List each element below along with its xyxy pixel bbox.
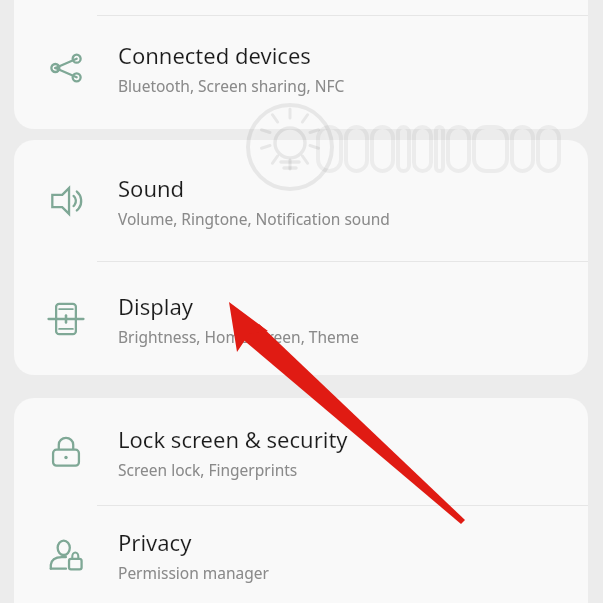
button[interactable]: Privacy — [14, 506, 588, 603]
staticText: Permission manager — [118, 562, 269, 583]
other: Sound — [14, 182, 118, 220]
staticText: Sound — [118, 173, 185, 203]
staticText: Connected devices — [118, 40, 311, 70]
staticText: Display — [118, 291, 194, 321]
button[interactable]: Connected devices — [14, 16, 588, 120]
button[interactable]: Sound — [14, 140, 588, 261]
other: Lock screen and security — [14, 433, 118, 471]
staticText: Screen lock, Fingerprints — [118, 459, 298, 480]
button[interactable]: Lock screen and security — [14, 398, 588, 505]
other: Connected devices — [14, 49, 118, 87]
staticText: Brightness, Home screen, Theme — [118, 326, 360, 347]
other: Display — [14, 300, 118, 338]
staticText: Volume, Ringtone, Notification sound — [118, 208, 390, 229]
other: Privacy — [14, 536, 118, 574]
staticText: Lock screen & security — [118, 424, 348, 454]
staticText: Bluetooth, Screen sharing, NFC — [118, 75, 345, 96]
button[interactable]: Display — [14, 262, 588, 375]
staticText: Privacy — [118, 527, 192, 557]
